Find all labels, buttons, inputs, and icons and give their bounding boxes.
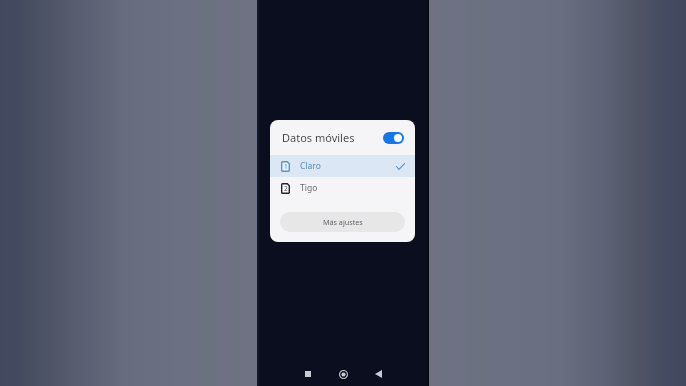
- button[interactable]: 1: [270, 155, 415, 177]
- staticText: Tigo: [300, 182, 318, 194]
- staticText: Claro: [300, 160, 321, 172]
- staticText: 2: [284, 184, 288, 193]
- staticText: Datos móviles: [282, 130, 355, 145]
- button[interactable]: Back: [367, 363, 389, 385]
- staticText: 1: [284, 162, 288, 171]
- button[interactable]: Más ajustes: [280, 212, 405, 232]
- staticText: Más ajustes: [323, 217, 363, 227]
- button[interactable]: Mobile data on: [383, 132, 404, 144]
- button[interactable]: Home: [332, 363, 354, 385]
- button[interactable]: 2: [270, 177, 415, 199]
- button[interactable]: Recent apps: [297, 363, 319, 385]
